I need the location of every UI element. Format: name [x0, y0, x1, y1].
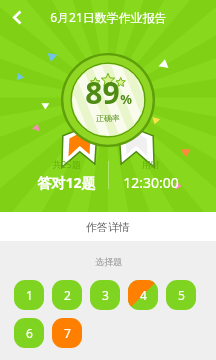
staticText: 4 [140, 287, 147, 303]
button[interactable]: 7 [52, 318, 82, 348]
staticText: 选择题 [95, 256, 122, 267]
staticText: 答对12题 [37, 173, 96, 192]
staticText: 正确率 [96, 113, 120, 123]
button[interactable]: 4 [128, 280, 158, 310]
staticText: 6 [26, 325, 33, 341]
staticText: 6月21日数学作业报告 [50, 9, 167, 25]
staticText: 3 [102, 287, 109, 303]
staticText: 7 [64, 325, 71, 341]
staticText: % [120, 90, 132, 108]
button[interactable]: 返回 [0, 0, 34, 34]
staticText: 共25题 [52, 158, 81, 170]
button[interactable]: 5 [166, 280, 196, 310]
button[interactable]: 6 [14, 318, 44, 348]
button[interactable]: 3 [90, 280, 120, 310]
staticText: 12:30:00 [123, 173, 179, 192]
staticText: 作答详情 [86, 220, 130, 234]
button[interactable]: 2 [52, 280, 82, 310]
staticText: 用时 [142, 159, 160, 170]
button[interactable]: 1 [14, 280, 44, 310]
staticText: 1 [26, 287, 33, 303]
button[interactable]: 作答详情 [0, 212, 216, 241]
staticText: 5 [178, 287, 185, 303]
staticText: 2 [64, 287, 71, 303]
staticText: 89 [85, 72, 120, 113]
